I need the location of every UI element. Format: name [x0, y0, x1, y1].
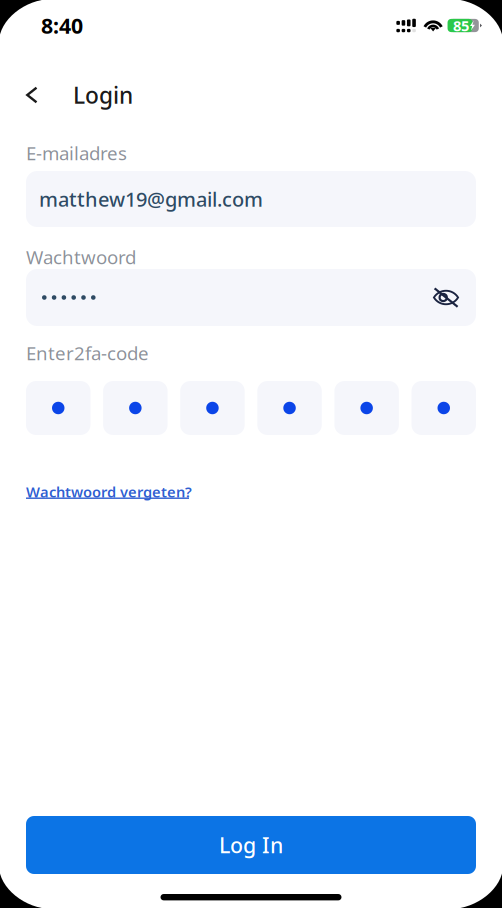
- staticText: Enter2fa-code: [26, 341, 149, 365]
- staticText: Wachtwoord vergeten?: [26, 482, 192, 501]
- staticText: 8:40: [41, 11, 83, 40]
- staticText: Login: [73, 80, 133, 110]
- staticText: Wachtwoord: [26, 245, 136, 269]
- staticText: Log In: [219, 831, 283, 859]
- staticText: 85: [453, 16, 469, 35]
- staticText: matthew19@gmail.com: [39, 186, 263, 212]
- button[interactable]: Log In: [26, 816, 476, 874]
- button[interactable]: Show password: [424, 275, 468, 319]
- button[interactable]: Back: [26, 70, 73, 120]
- staticText: E-mailadres: [26, 141, 127, 165]
- button[interactable]: Wachtwoord vergeten?: [26, 482, 192, 502]
